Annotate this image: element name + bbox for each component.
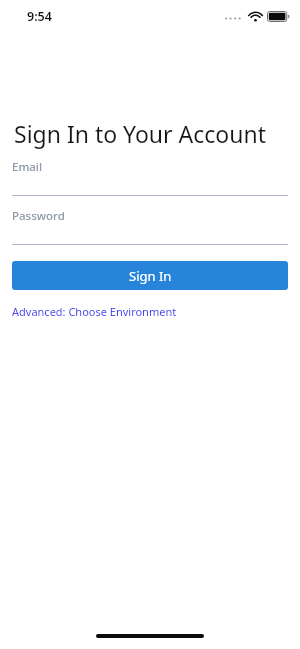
staticText: Email [12,159,43,175]
staticText: Password [12,208,65,224]
button[interactable]: Email [0,159,300,196]
staticText: Sign In to Your Account [14,118,266,149]
button[interactable]: Password [0,208,300,245]
staticText: Sign In [129,267,172,285]
staticText: Advanced: Choose Environment [12,304,177,319]
staticText: 9:54 [27,8,52,25]
button[interactable]: Advanced: Choose Environment [12,304,177,319]
button[interactable]: Sign In [12,261,288,290]
